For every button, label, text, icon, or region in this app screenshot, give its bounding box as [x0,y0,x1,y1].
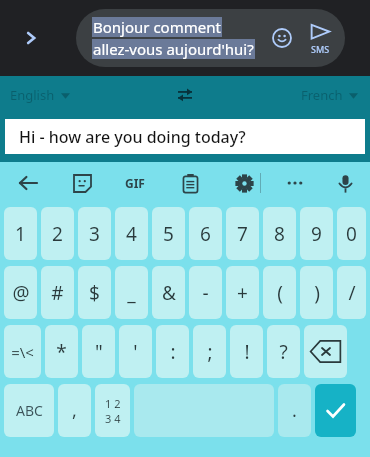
button[interactable]: " [82,325,115,378]
button[interactable]: Voice input [329,167,361,199]
staticText: . [292,398,297,423]
button[interactable]: 7 [226,207,259,260]
staticText: SMS [311,43,330,55]
button[interactable]: Clipboard [174,167,206,199]
staticText: * [56,339,67,365]
button[interactable]: 9 [300,207,333,260]
button[interactable]: ; [193,325,226,378]
button[interactable]: , [58,384,91,437]
button[interactable]: 5 [152,207,185,260]
button[interactable]: Back [12,167,44,199]
button[interactable]: 2 [41,207,74,260]
button[interactable]: $ [78,266,111,319]
staticText: ) [314,280,320,306]
button[interactable]: Swap languages [170,80,200,110]
button[interactable]: + [226,266,259,319]
button[interactable]: Expand [14,21,48,55]
staticText: English [10,86,55,104]
staticText: " [95,339,103,365]
staticText: @ [12,280,30,306]
staticText: # [51,280,64,306]
staticText: - [202,280,209,306]
staticText: ABC [16,401,43,420]
button[interactable]: * [45,325,78,378]
button[interactable]: ? [267,325,300,378]
staticText: French [301,86,343,104]
staticText: 7 [237,221,248,247]
staticText: 0 [346,221,357,247]
staticText: 5 [163,221,174,247]
button[interactable]: ! [230,325,263,378]
staticText: =\< [11,342,34,362]
staticText: 1 2 [105,396,121,411]
button[interactable]: . [278,384,311,437]
staticText: ( [277,280,283,306]
button[interactable]: # [41,266,74,319]
button[interactable]: French [301,86,358,104]
staticText: _ [127,280,136,306]
staticText: $ [89,280,100,306]
button[interactable]: English [10,86,70,104]
button[interactable]: 1 2 [95,384,130,437]
staticText: 8 [274,221,285,247]
button[interactable]: 8 [263,207,296,260]
staticText: 3 [89,221,100,247]
staticText: 1 [15,221,26,247]
button[interactable]: Bonjour comment [76,9,345,67]
button[interactable]: ( [263,266,296,319]
staticText: / [348,280,356,306]
button[interactable]: =\< [4,325,41,378]
button[interactable]: ABC [4,384,54,437]
button[interactable]: 6 [189,207,222,260]
button[interactable]: Stickers [66,167,98,199]
button[interactable]: GIF [118,166,152,200]
button[interactable] [315,384,356,437]
button[interactable]: & [152,266,185,319]
button[interactable]: ) [300,266,333,319]
staticText: 4 [126,221,137,247]
staticText: ; [207,339,213,365]
staticText: GIF [125,175,145,191]
button[interactable]: ' [119,325,152,378]
staticText: allez-vous aujourd'hui? [93,39,254,59]
staticText: Hi - how are you doing today? [19,126,246,148]
staticText: ? [279,339,288,365]
staticText: Bonjour comment [93,17,221,37]
staticText: , [72,398,77,423]
button[interactable]: 3 [78,207,111,260]
button[interactable]: 4 [115,207,148,260]
button[interactable]: Emoji [265,21,299,55]
staticText: & [162,280,176,306]
staticText: 2 [52,221,63,247]
button[interactable]: Settings [228,167,260,199]
button[interactable] [304,325,347,378]
button[interactable]: @ [4,266,37,319]
staticText: : [170,339,176,365]
staticText: 6 [200,221,211,247]
button[interactable]: 0 [337,207,366,260]
button[interactable]: / [337,266,366,319]
staticText: ! [244,339,250,365]
staticText: ' [133,339,138,365]
button[interactable]: More options [279,167,311,199]
button[interactable]: - [189,266,222,319]
staticText: 9 [311,221,322,247]
button[interactable]: : [156,325,189,378]
button[interactable]: Send SMS [305,17,335,59]
button[interactable]: _ [115,266,148,319]
button[interactable]: Hi - how are you doing today? [5,119,365,154]
staticText: 3 4 [105,411,121,426]
button[interactable]: 1 [4,207,37,260]
staticText: + [237,280,248,306]
